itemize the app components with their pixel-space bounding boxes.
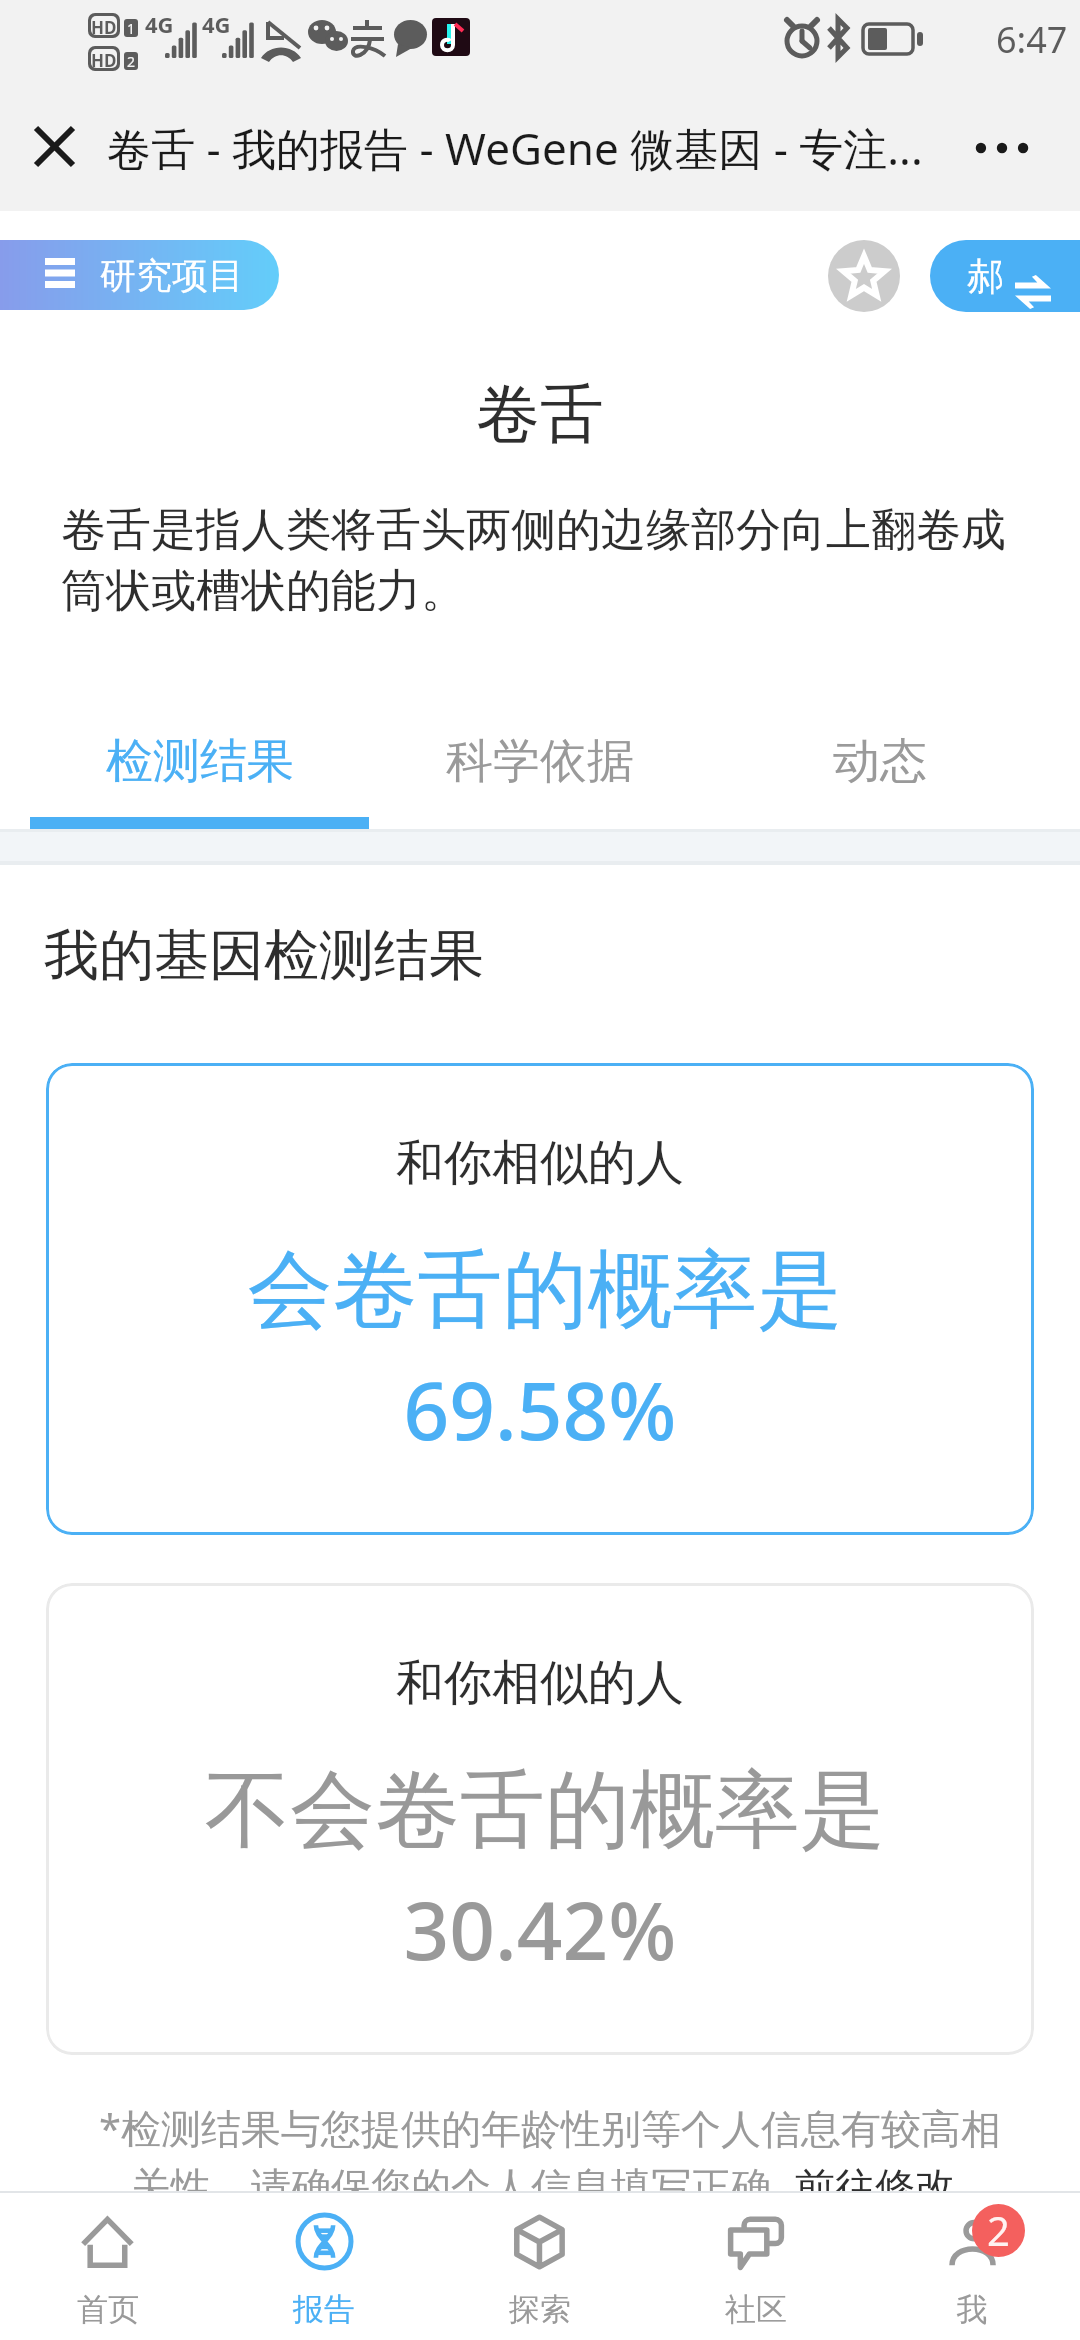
button[interactable]: More options [965, 110, 1039, 184]
button[interactable]: 和你相似的人 [46, 1063, 1034, 1535]
staticText: 2 [127, 52, 136, 70]
staticText: 动态 [833, 732, 927, 791]
staticText: HD [91, 16, 117, 35]
button[interactable]: 探索 [432, 2193, 648, 2340]
button[interactable]: 科学依据 [370, 700, 710, 829]
staticText: 30.42% [46, 1874, 1034, 1983]
staticText: 郝 [967, 253, 1004, 300]
staticText: 不会卷舌的概率是 [51, 1757, 1034, 1864]
staticText: 报告 [216, 2290, 432, 2329]
button[interactable]: 我 [864, 2193, 1080, 2340]
button[interactable]: 首页 [0, 2193, 216, 2340]
staticText: 探索 [432, 2290, 648, 2329]
button[interactable]: 前往修改 [795, 2162, 955, 2212]
button[interactable]: 社区 [648, 2193, 864, 2340]
staticText: 4G [202, 9, 231, 39]
staticText: 研究项目 [100, 253, 244, 298]
staticText: 首页 [0, 2290, 216, 2329]
staticText: 卷舌是指人类将舌头两侧的边缘部分向上翻卷成 筒状或槽状的能力。 [61, 502, 1080, 619]
staticText: HD [91, 49, 117, 68]
button[interactable]: 动态 [710, 700, 1050, 829]
button[interactable]: Close [20, 112, 88, 180]
staticText: 社区 [648, 2290, 864, 2329]
staticText: 科学依据 [446, 732, 634, 791]
button[interactable]: 报告 [216, 2193, 432, 2340]
staticText: 我 [864, 2290, 1080, 2329]
staticText: 4G [145, 9, 174, 39]
staticText: 卷舌 - 我的报告 - WeGene 微基因 - 专注... [107, 118, 923, 178]
button[interactable]: 研究项目 [0, 240, 279, 310]
staticText: 会卷舌的概率是 [51, 1237, 1034, 1344]
staticText: 我的基因检测结果 [44, 921, 484, 990]
staticText: 1 [127, 19, 136, 37]
staticText: *检测结果与您提供的年龄性别等个人信息有较高相 [99, 2100, 1002, 2155]
button[interactable]: 和你相似的人 [46, 1583, 1034, 2055]
button[interactable]: 检测结果 [30, 700, 370, 829]
staticText: 检测结果 [106, 732, 294, 791]
staticText: 69.58% [46, 1354, 1034, 1463]
staticText: 和你相似的人 [46, 1133, 1034, 1193]
staticText: 2 [987, 2204, 1010, 2256]
staticText: 6:47 [996, 15, 1068, 64]
staticText: 关性，请确保您的个人信息填写正确。 [131, 2162, 811, 2212]
staticText: 和你相似的人 [46, 1653, 1034, 1713]
staticText: 卷舌 [0, 374, 1080, 455]
button[interactable]: Favorite [828, 240, 900, 312]
button[interactable]: 郝 [930, 240, 1080, 312]
